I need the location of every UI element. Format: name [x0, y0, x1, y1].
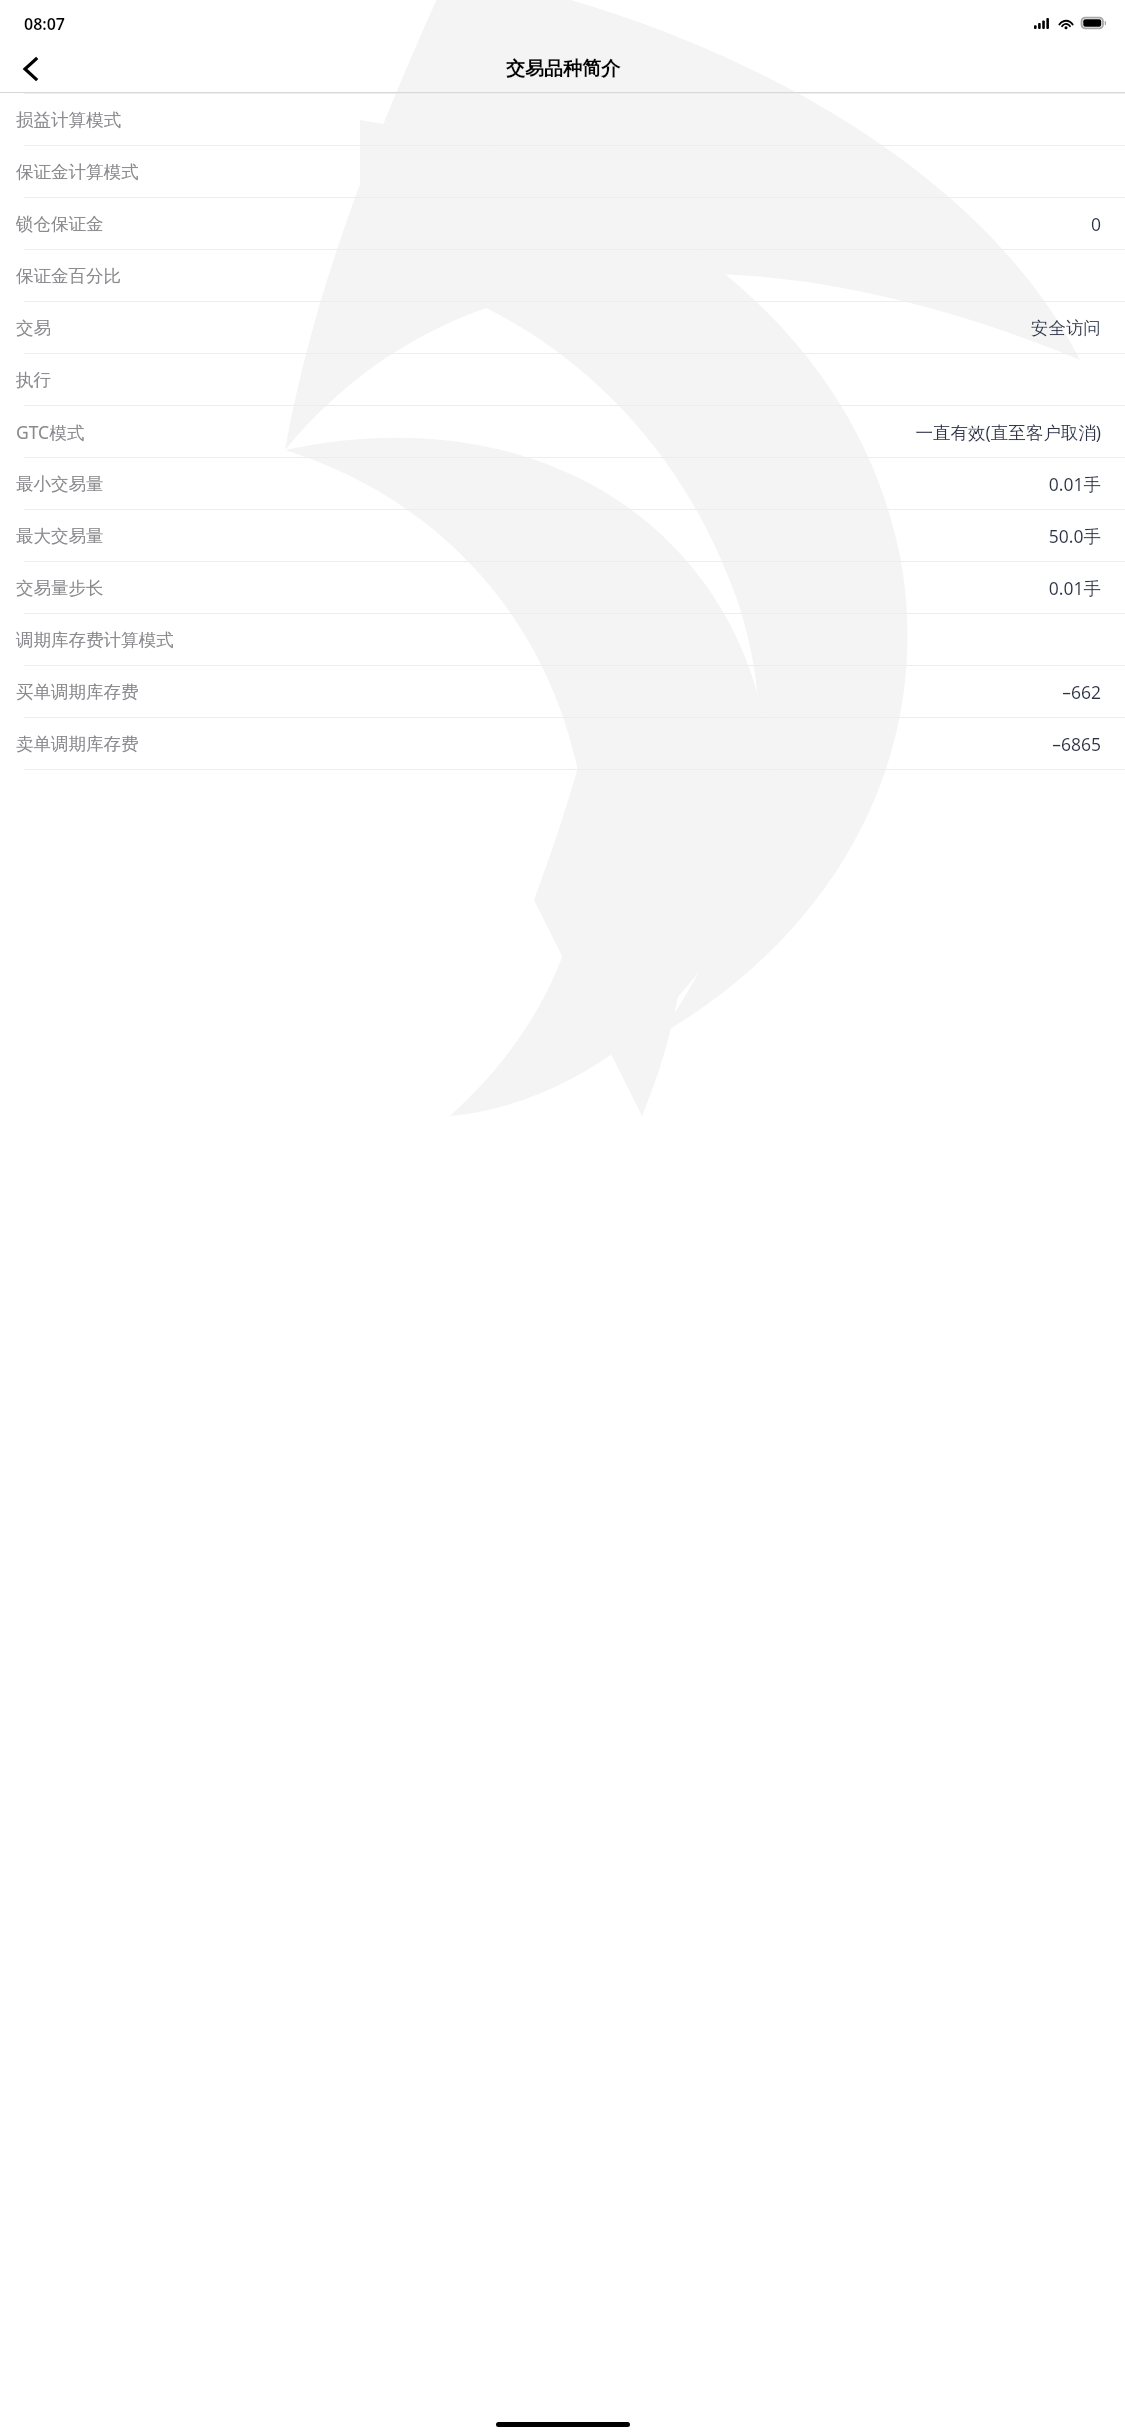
staticText: 调期库存费计算模式 — [16, 629, 174, 651]
button[interactable]: 锁仓保证金 — [0, 198, 1125, 250]
button[interactable]: 买单调期库存费 — [0, 666, 1125, 718]
staticText: 保证金百分比 — [16, 265, 121, 287]
staticText: 最小交易量 — [16, 473, 104, 495]
button[interactable]: 交易 — [0, 302, 1125, 354]
button[interactable]: 交易量步长 — [0, 562, 1125, 614]
staticText: 最大交易量 — [16, 525, 104, 547]
button[interactable]: 保证金计算模式 — [0, 146, 1125, 198]
staticText: 执行 — [16, 369, 51, 391]
button[interactable]: Back — [6, 45, 54, 93]
button[interactable]: 保证金百分比 — [0, 250, 1125, 302]
staticText: GTC模式 — [16, 420, 85, 444]
staticText: –662 — [1062, 680, 1101, 704]
staticText: 交易品种简介 — [506, 57, 620, 81]
button[interactable]: 最小交易量 — [0, 458, 1125, 510]
staticText: 0.01手 — [1048, 472, 1101, 496]
button[interactable]: 卖单调期库存费 — [0, 718, 1125, 770]
staticText: 卖单调期库存费 — [16, 733, 139, 755]
staticText: 买单调期库存费 — [16, 681, 139, 703]
button[interactable]: 调期库存费计算模式 — [0, 614, 1125, 666]
staticText: 保证金计算模式 — [16, 161, 139, 183]
button[interactable]: 执行 — [0, 354, 1125, 406]
staticText: 交易量步长 — [16, 577, 104, 599]
button[interactable]: GTC模式 — [0, 406, 1125, 458]
staticText: 安全访问 — [1031, 317, 1101, 339]
staticText: 0.01手 — [1048, 576, 1101, 600]
staticText: 0 — [1090, 212, 1101, 236]
staticText: –6865 — [1052, 732, 1101, 756]
staticText: 50.0手 — [1048, 524, 1101, 548]
staticText: 交易 — [16, 317, 51, 339]
button[interactable]: 损益计算模式 — [0, 94, 1125, 146]
staticText: 锁仓保证金 — [16, 213, 104, 235]
staticText: 一直有效(直至客户取消) — [915, 420, 1101, 444]
staticText: 损益计算模式 — [16, 109, 121, 131]
button[interactable]: 最大交易量 — [0, 510, 1125, 562]
staticText: 08:07 — [24, 13, 66, 35]
